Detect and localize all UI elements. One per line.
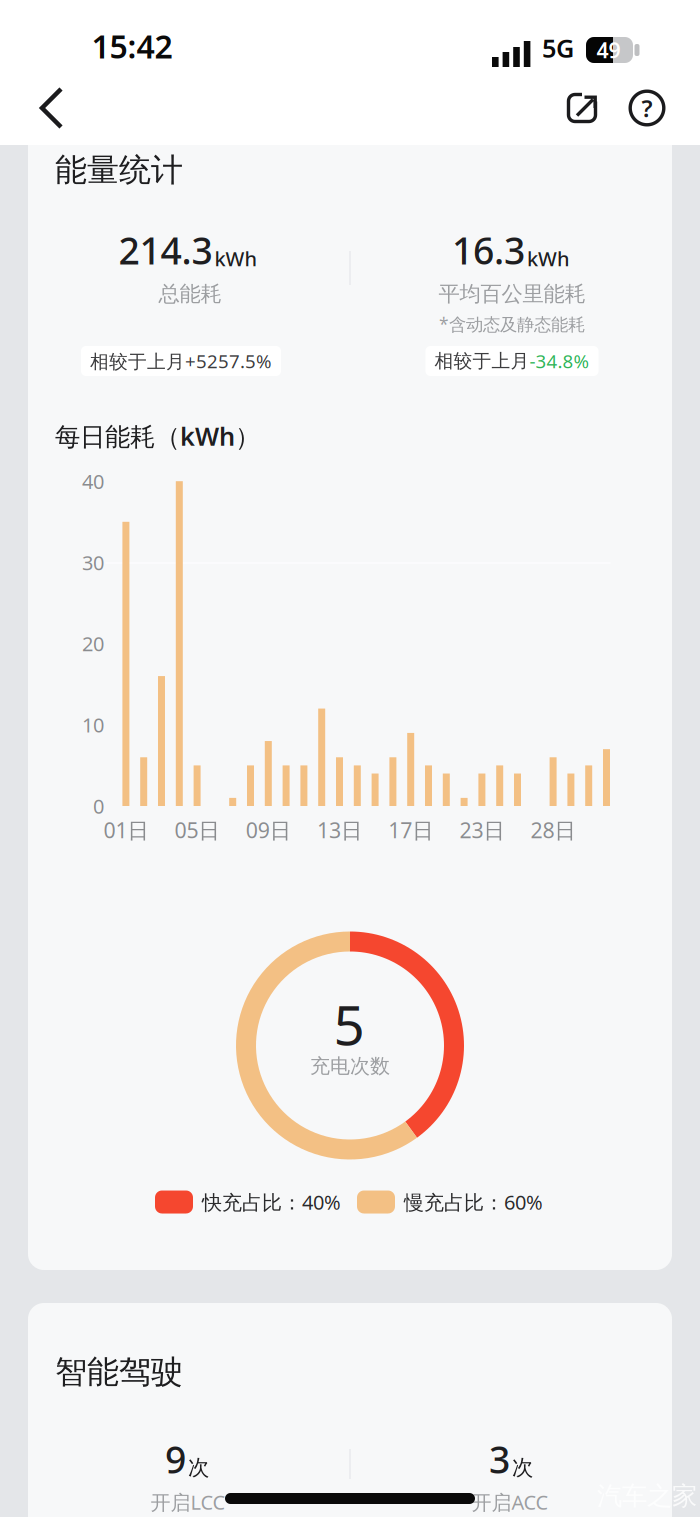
- staticText: 40: [82, 468, 104, 494]
- staticText: 智能驾驶: [55, 1352, 183, 1392]
- staticText: 15:42: [91, 25, 172, 67]
- staticText: 16.3: [452, 225, 525, 275]
- staticText: 13日: [317, 816, 362, 844]
- staticText: 每日能耗（kWh）: [55, 419, 260, 453]
- staticText: 快充占比：40%: [202, 1189, 341, 1215]
- staticText: kWh: [214, 245, 257, 272]
- button[interactable]: Share: [556, 82, 608, 134]
- staticText: 总能耗: [158, 281, 221, 307]
- staticText: 01日: [103, 816, 148, 844]
- staticText: 214.3: [118, 225, 212, 275]
- staticText: 30: [82, 549, 104, 576]
- staticText: 23日: [459, 816, 504, 844]
- button[interactable]: Back: [28, 82, 80, 134]
- staticText: 5G: [542, 31, 574, 65]
- staticText: 慢充占比：60%: [404, 1189, 543, 1215]
- staticText: 次: [188, 1455, 209, 1481]
- staticText: 05日: [175, 816, 220, 844]
- staticText: 10: [82, 711, 104, 738]
- staticText: 28日: [531, 816, 576, 844]
- staticText: 17日: [388, 816, 433, 844]
- staticText: 09日: [246, 816, 291, 844]
- staticText: ?: [641, 92, 652, 124]
- staticText: 20: [82, 630, 104, 657]
- staticText: 相较于上月+5257.5%: [90, 349, 272, 373]
- staticText: kWh: [527, 245, 570, 272]
- staticText: 0: [93, 793, 104, 819]
- staticText: 开启ACC: [471, 1489, 548, 1515]
- staticText: 能量统计: [55, 150, 183, 190]
- staticText: 次: [512, 1455, 533, 1481]
- staticText: -34.8%: [529, 349, 589, 373]
- staticText: 9: [165, 1434, 186, 1484]
- staticText: 充电次数: [310, 1054, 390, 1078]
- button[interactable]: Help: [621, 82, 673, 134]
- staticText: 平均百公里能耗: [438, 281, 585, 307]
- staticText: 汽车之家: [597, 1480, 697, 1511]
- staticText: 3: [489, 1434, 510, 1484]
- staticText: 49: [596, 36, 620, 64]
- staticText: *含动态及静态能耗: [439, 312, 585, 335]
- staticText: 5: [333, 988, 364, 1060]
- staticText: 相较于上月: [434, 349, 529, 372]
- staticText: 开启LCC: [150, 1489, 225, 1515]
